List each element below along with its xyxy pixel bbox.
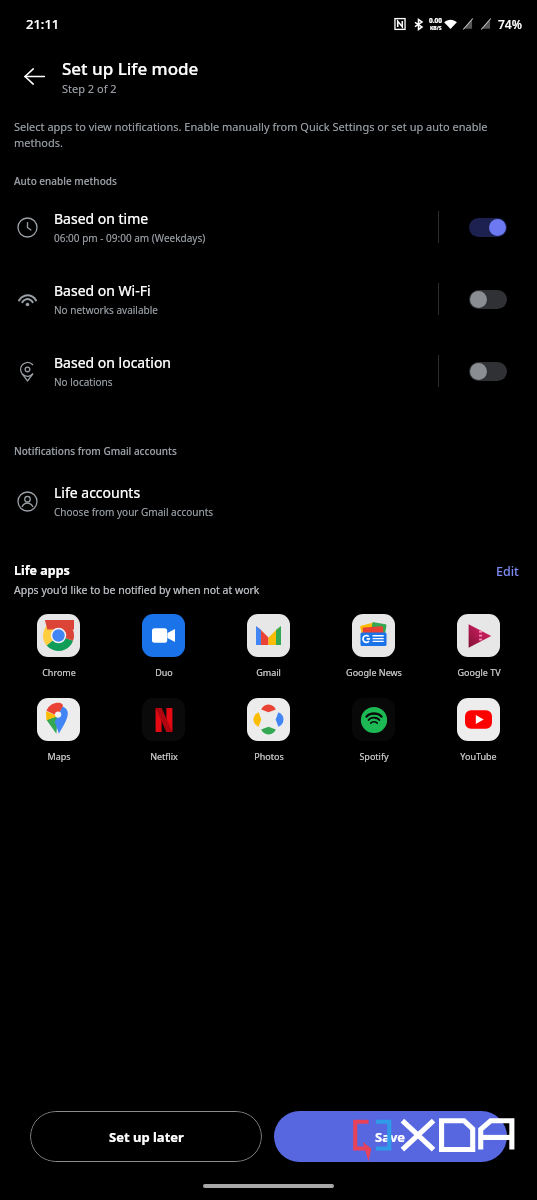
button[interactable]: Google TV [426,611,531,681]
staticText: Based on Wi-Fi [54,281,151,300]
button[interactable]: Duo [111,611,216,681]
button[interactable]: Edit [492,562,523,581]
button[interactable]: Gmail [216,611,321,681]
button[interactable]: Based on time [0,198,537,256]
staticText: Gmail [256,666,281,678]
staticText: Google TV [457,666,501,678]
staticText: Apps you'd like to be notified by when n… [14,583,260,597]
button[interactable]: Based on Wi-Fi [0,270,537,328]
button[interactable]: Chrome [6,611,111,681]
staticText: YouTube [460,750,497,762]
staticText: 21:11 [26,15,60,33]
staticText: Set up later [109,1128,184,1146]
staticText: Netflix [150,750,178,762]
staticText: Life apps [14,562,70,579]
button[interactable] [439,198,537,256]
button[interactable]: Life accounts [0,474,537,528]
button[interactable]: Google News [321,611,426,681]
staticText: Maps [47,750,71,762]
button[interactable]: YouTube [426,695,531,765]
staticText: Based on location [54,353,172,372]
staticText: 74% [498,16,522,32]
staticText: 06:00 pm - 09:00 am (Weekdays) [54,231,206,245]
staticText: 0.00 [429,16,442,25]
button[interactable]: Set up later [30,1111,262,1162]
staticText: Duo [155,666,173,678]
button[interactable]: Maps [6,695,111,765]
button[interactable]: Spotify [321,695,426,765]
button[interactable] [439,342,537,400]
staticText: Save [375,1128,406,1146]
button[interactable]: Photos [216,695,321,765]
button[interactable]: Back [12,54,56,98]
button[interactable]: Netflix [111,695,216,765]
staticText: No networks available [54,303,158,317]
staticText: Spotify [359,750,389,762]
staticText: Edit [496,563,519,580]
staticText: Life accounts [54,483,141,502]
staticText: Google News [346,666,402,678]
staticText: Based on time [54,209,149,228]
staticText: Step 2 of 2 [62,81,117,96]
button[interactable]: Save [274,1111,507,1162]
staticText: Photos [254,750,284,762]
staticText: Notifications from Gmail accounts [14,444,177,458]
staticText: Select apps to view notifications. Enabl… [14,119,523,150]
staticText: Set up Life mode [62,57,199,80]
staticText: No locations [54,375,113,389]
button[interactable] [439,270,537,328]
staticText: Choose from your Gmail accounts [54,505,214,519]
button[interactable]: Based on location [0,342,537,400]
staticText: Chrome [42,666,76,678]
staticText: KB/S [430,25,442,32]
staticText: Auto enable methods [14,174,117,188]
